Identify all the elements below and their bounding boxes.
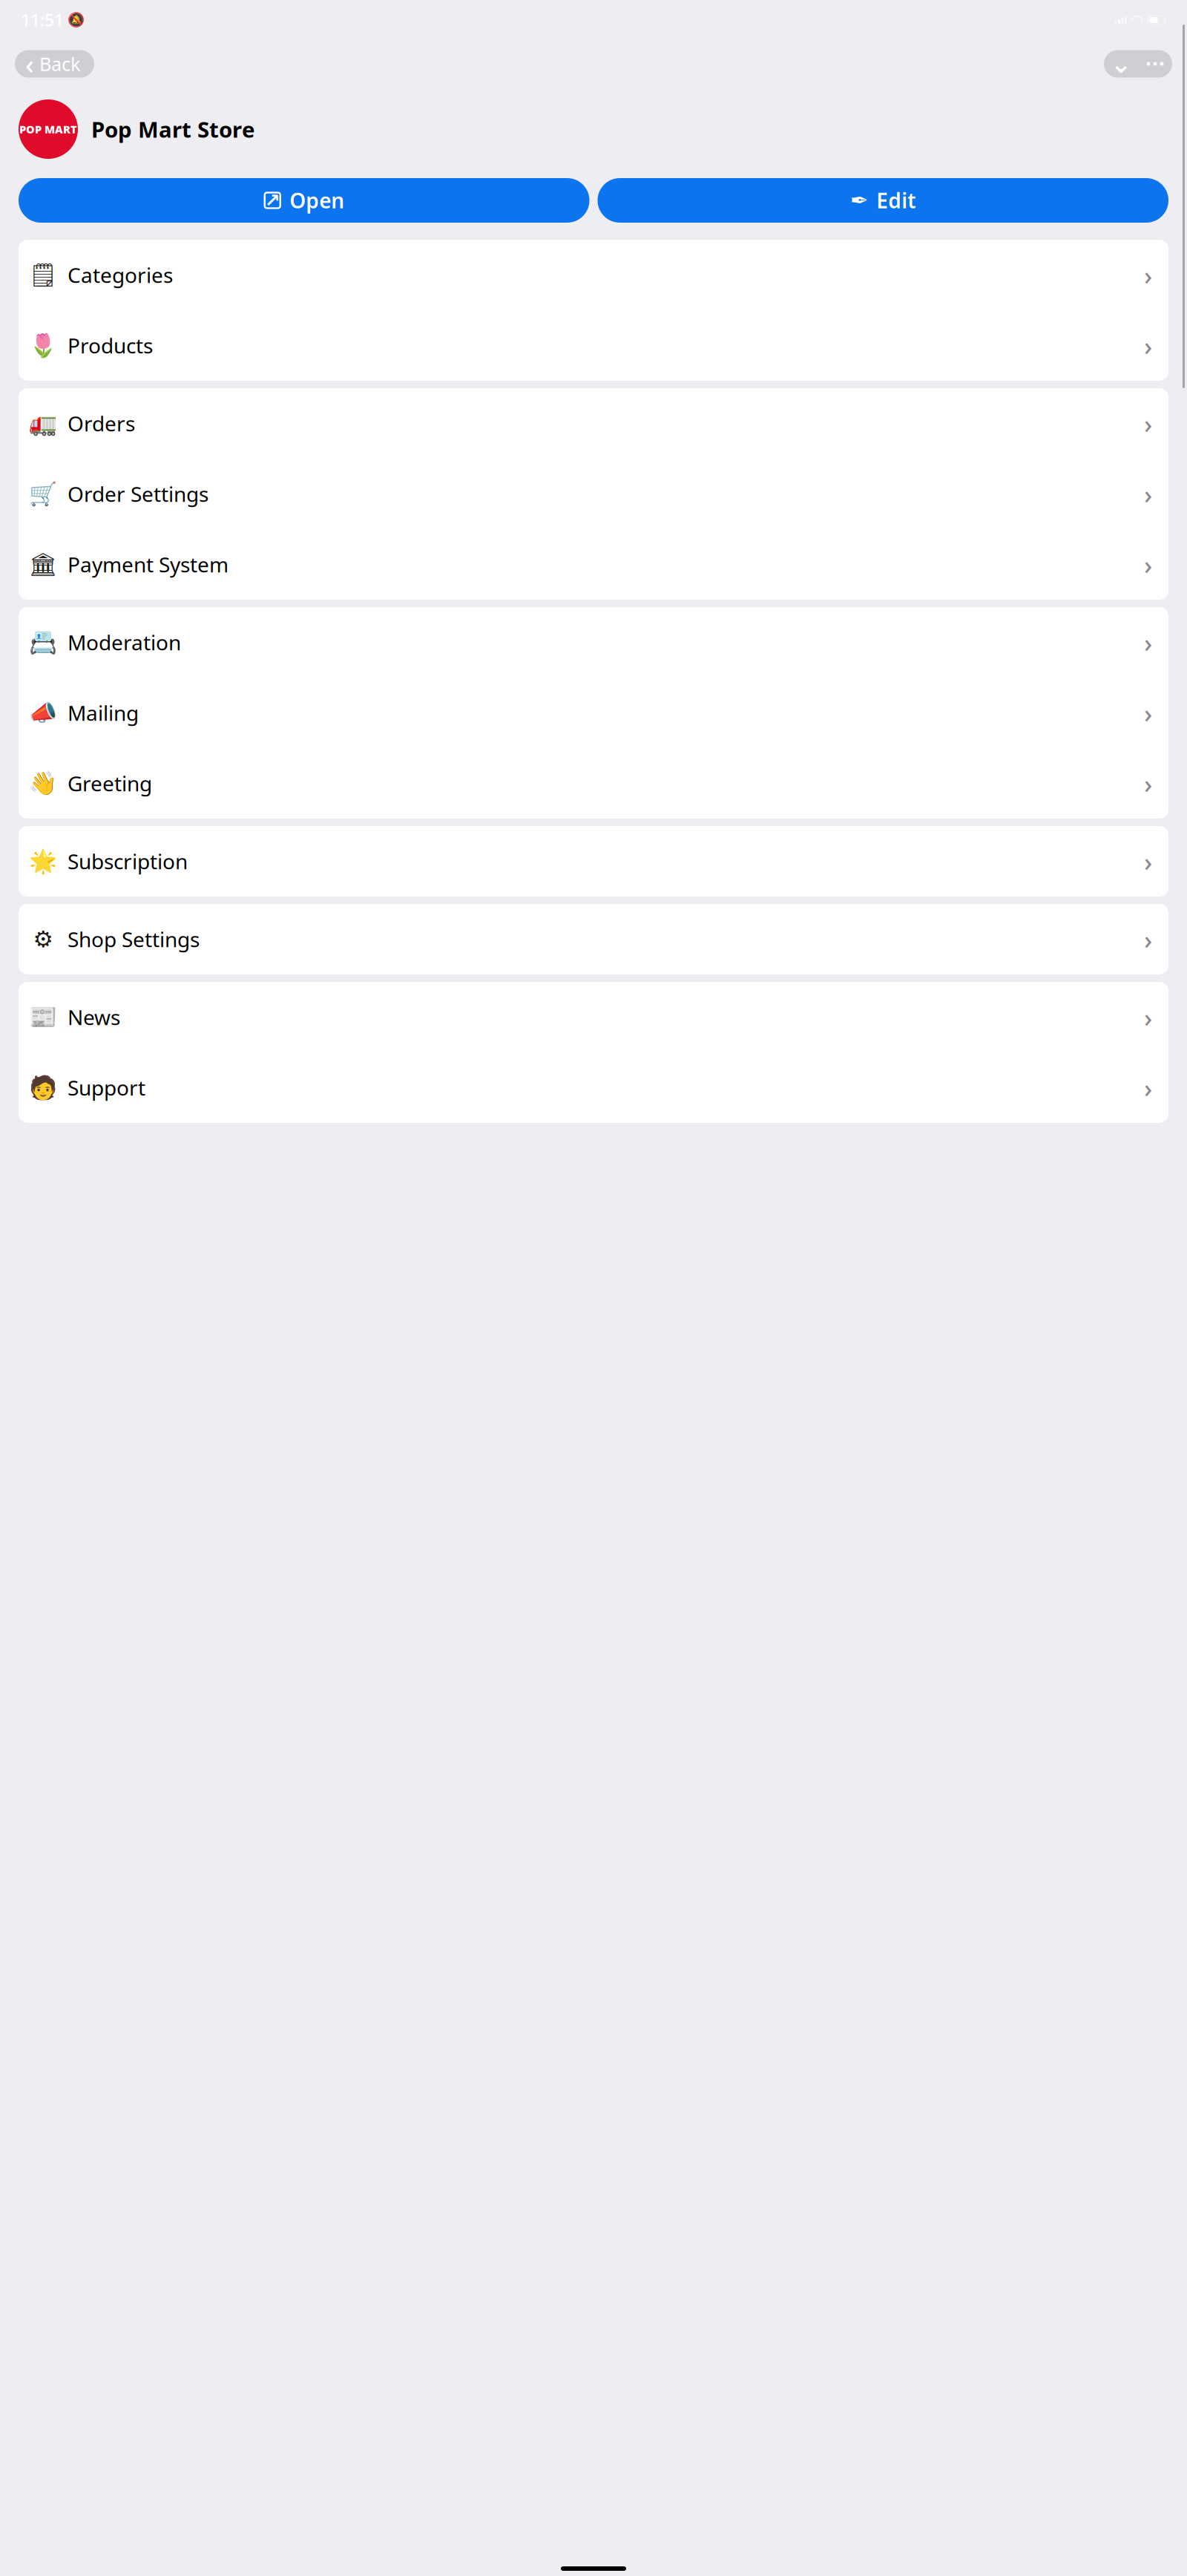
staticText: News: [68, 1003, 120, 1031]
staticText: ›: [1144, 696, 1152, 730]
button[interactable]: ✒: [598, 178, 1168, 223]
staticText: Payment System: [68, 551, 228, 578]
staticText: ›: [1144, 1071, 1152, 1105]
button[interactable]: Collapse: [1104, 50, 1138, 78]
staticText: ›: [1144, 406, 1152, 440]
staticText: ›: [1144, 766, 1152, 800]
staticText: Categories: [68, 261, 173, 289]
staticText: Order Settings: [68, 480, 208, 508]
button[interactable]: ↗: [19, 178, 589, 223]
staticText: Open: [289, 187, 344, 214]
staticText: ↗: [265, 190, 280, 211]
button[interactable]: 🌷: [19, 310, 1168, 381]
staticText: 👋: [29, 770, 57, 796]
staticText: ›: [1144, 625, 1152, 659]
staticText: Support: [68, 1074, 145, 1101]
staticText: 📰: [29, 1004, 57, 1030]
staticText: Orders: [68, 410, 135, 437]
staticText: Edit: [876, 187, 916, 214]
staticText: ›: [1144, 328, 1152, 363]
staticText: 🛒: [29, 481, 57, 507]
button[interactable]: 🧑: [19, 1052, 1168, 1123]
button[interactable]: ⚙: [19, 904, 1168, 974]
staticText: ›: [1144, 1000, 1152, 1034]
staticText: Moderation: [68, 629, 181, 656]
staticText: 🌷: [29, 332, 57, 358]
staticText: ›: [1144, 477, 1152, 511]
staticText: Pop Mart Store: [91, 115, 255, 144]
button[interactable]: More options: [1138, 50, 1172, 78]
staticText: 🏛: [29, 551, 57, 577]
staticText: POP MART: [19, 122, 77, 136]
staticText: 📣: [29, 700, 57, 726]
staticText: Shop Settings: [68, 925, 200, 953]
staticText: ›: [1144, 547, 1152, 581]
button[interactable]: 🛒: [19, 459, 1168, 529]
button[interactable]: 👋: [19, 748, 1168, 819]
staticText: 🌟: [29, 848, 57, 874]
staticText: ✒: [850, 188, 869, 213]
staticText: 📇: [29, 629, 57, 655]
staticText: Greeting: [68, 770, 152, 797]
button[interactable]: 🗒: [19, 240, 1168, 310]
staticText: 11:51: [21, 9, 64, 31]
button[interactable]: 🚛: [19, 388, 1168, 459]
staticText: Mailing: [68, 699, 139, 727]
button[interactable]: 📰: [19, 982, 1168, 1052]
staticText: ›: [1144, 922, 1152, 956]
staticText: Back: [39, 51, 81, 76]
button[interactable]: 📇: [19, 607, 1168, 678]
staticText: 🚛: [29, 410, 57, 436]
staticText: Products: [68, 332, 153, 359]
button[interactable]: 🏛: [19, 529, 1168, 600]
staticText: ›: [1144, 258, 1152, 292]
staticText: ‹: [25, 46, 34, 82]
staticText: 🔕: [68, 12, 85, 28]
staticText: Subscription: [68, 847, 188, 875]
button[interactable]: 📣: [19, 678, 1168, 748]
staticText: 🗒: [29, 262, 57, 288]
staticText: ⚙: [33, 926, 53, 952]
button[interactable]: 🌟: [19, 826, 1168, 897]
staticText: ◠: [1131, 12, 1142, 28]
staticText: ›: [1144, 844, 1152, 878]
staticText: ⌄: [1110, 49, 1132, 78]
button[interactable]: ‹: [15, 50, 94, 78]
staticText: 🧑: [29, 1075, 57, 1101]
